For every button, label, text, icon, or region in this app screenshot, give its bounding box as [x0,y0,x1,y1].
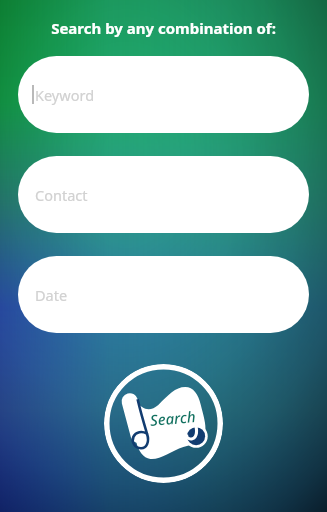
button[interactable]: Search [104,364,223,483]
button[interactable]: Date [18,256,309,333]
staticText: Search by any combination of: [51,18,276,38]
staticText: Keyword [35,85,95,105]
button[interactable]: Keyword [18,56,309,133]
staticText: Contact [35,185,88,205]
staticText: Search [149,406,197,430]
button[interactable]: Contact [18,156,309,233]
staticText: Date [35,285,68,305]
